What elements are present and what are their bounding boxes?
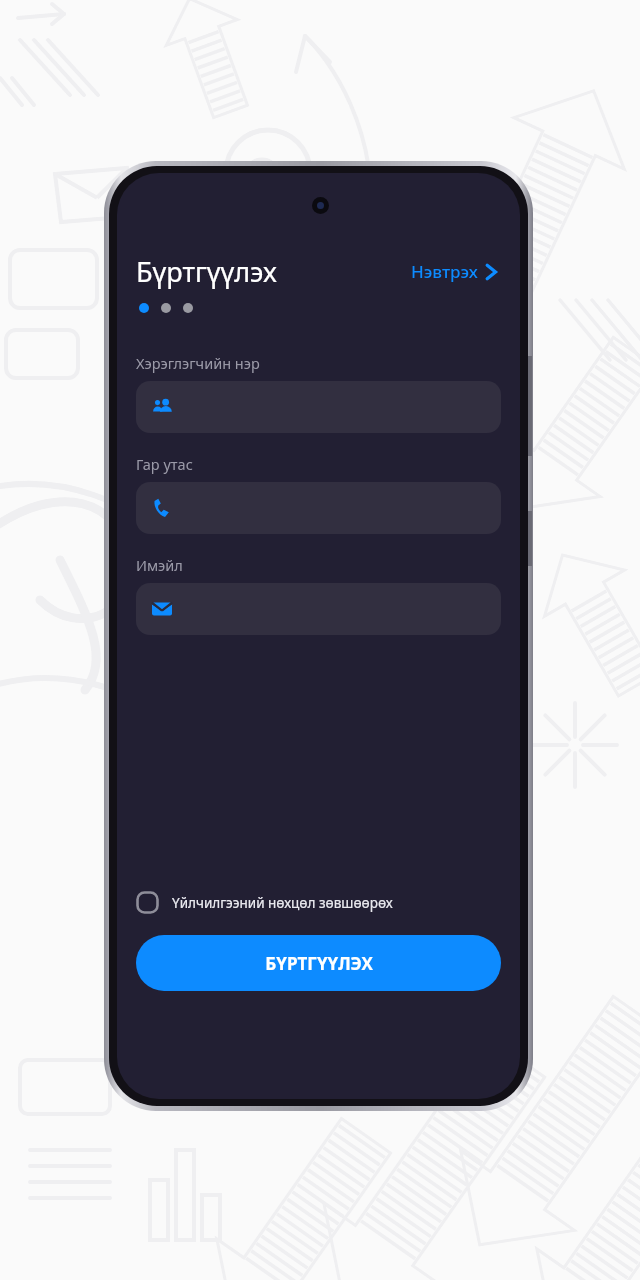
button[interactable]: БҮРТГҮҮЛЭХ — [136, 935, 501, 991]
button[interactable]: Email — [136, 583, 501, 635]
staticText: Имэйл — [136, 555, 183, 575]
button[interactable]: Үйлчилгээний нөхцөл зөвшөөрөх — [136, 887, 501, 918]
button[interactable]: Username — [136, 381, 501, 433]
staticText: Бүртгүүлэх — [136, 253, 277, 290]
button[interactable]: Phone — [136, 482, 501, 534]
other: Email — [152, 599, 172, 619]
staticText: БҮРТГҮҮЛЭХ — [265, 952, 373, 975]
staticText: Нэвтрэх — [411, 260, 478, 283]
other: Phone — [152, 498, 173, 519]
staticText: Үйлчилгээний нөхцөл зөвшөөрөх — [172, 894, 393, 912]
button[interactable]: Нэвтрэх — [407, 256, 501, 287]
staticText: Гар утас — [136, 454, 193, 474]
other: Username — [152, 396, 174, 418]
staticText: Хэрэглэгчийн нэр — [136, 353, 260, 373]
